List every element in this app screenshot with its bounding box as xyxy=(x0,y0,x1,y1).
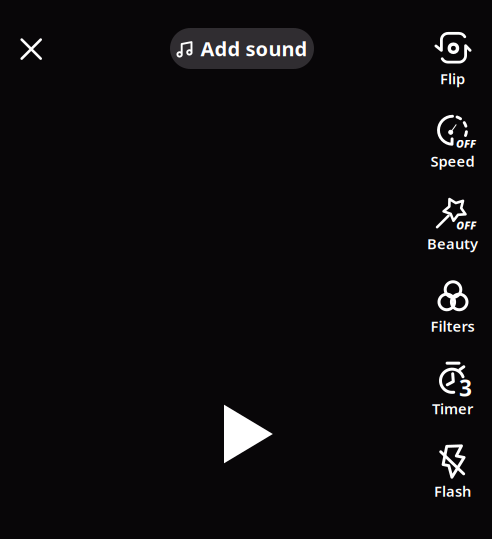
button[interactable]: Timer xyxy=(418,360,486,418)
staticText: OFF xyxy=(456,218,476,232)
staticText: Flash xyxy=(434,481,471,501)
staticText: OFF xyxy=(456,136,476,151)
button[interactable]: Speed xyxy=(418,112,486,170)
staticText: Speed xyxy=(430,151,474,171)
staticText: Flip xyxy=(440,69,465,88)
staticText: Add sound xyxy=(200,35,307,62)
staticText: 3 xyxy=(459,373,472,403)
staticText: Timer xyxy=(432,399,473,418)
button[interactable]: Add sound xyxy=(170,28,314,69)
staticText: Filters xyxy=(430,316,474,336)
button[interactable]: Flip xyxy=(418,30,486,88)
button[interactable]: Flash xyxy=(418,442,486,500)
button[interactable]: Close xyxy=(9,27,53,71)
button[interactable]: Filters xyxy=(418,277,486,335)
staticText: Beauty xyxy=(427,234,478,253)
button[interactable]: Beauty xyxy=(418,195,486,253)
button[interactable]: Play xyxy=(224,407,270,461)
